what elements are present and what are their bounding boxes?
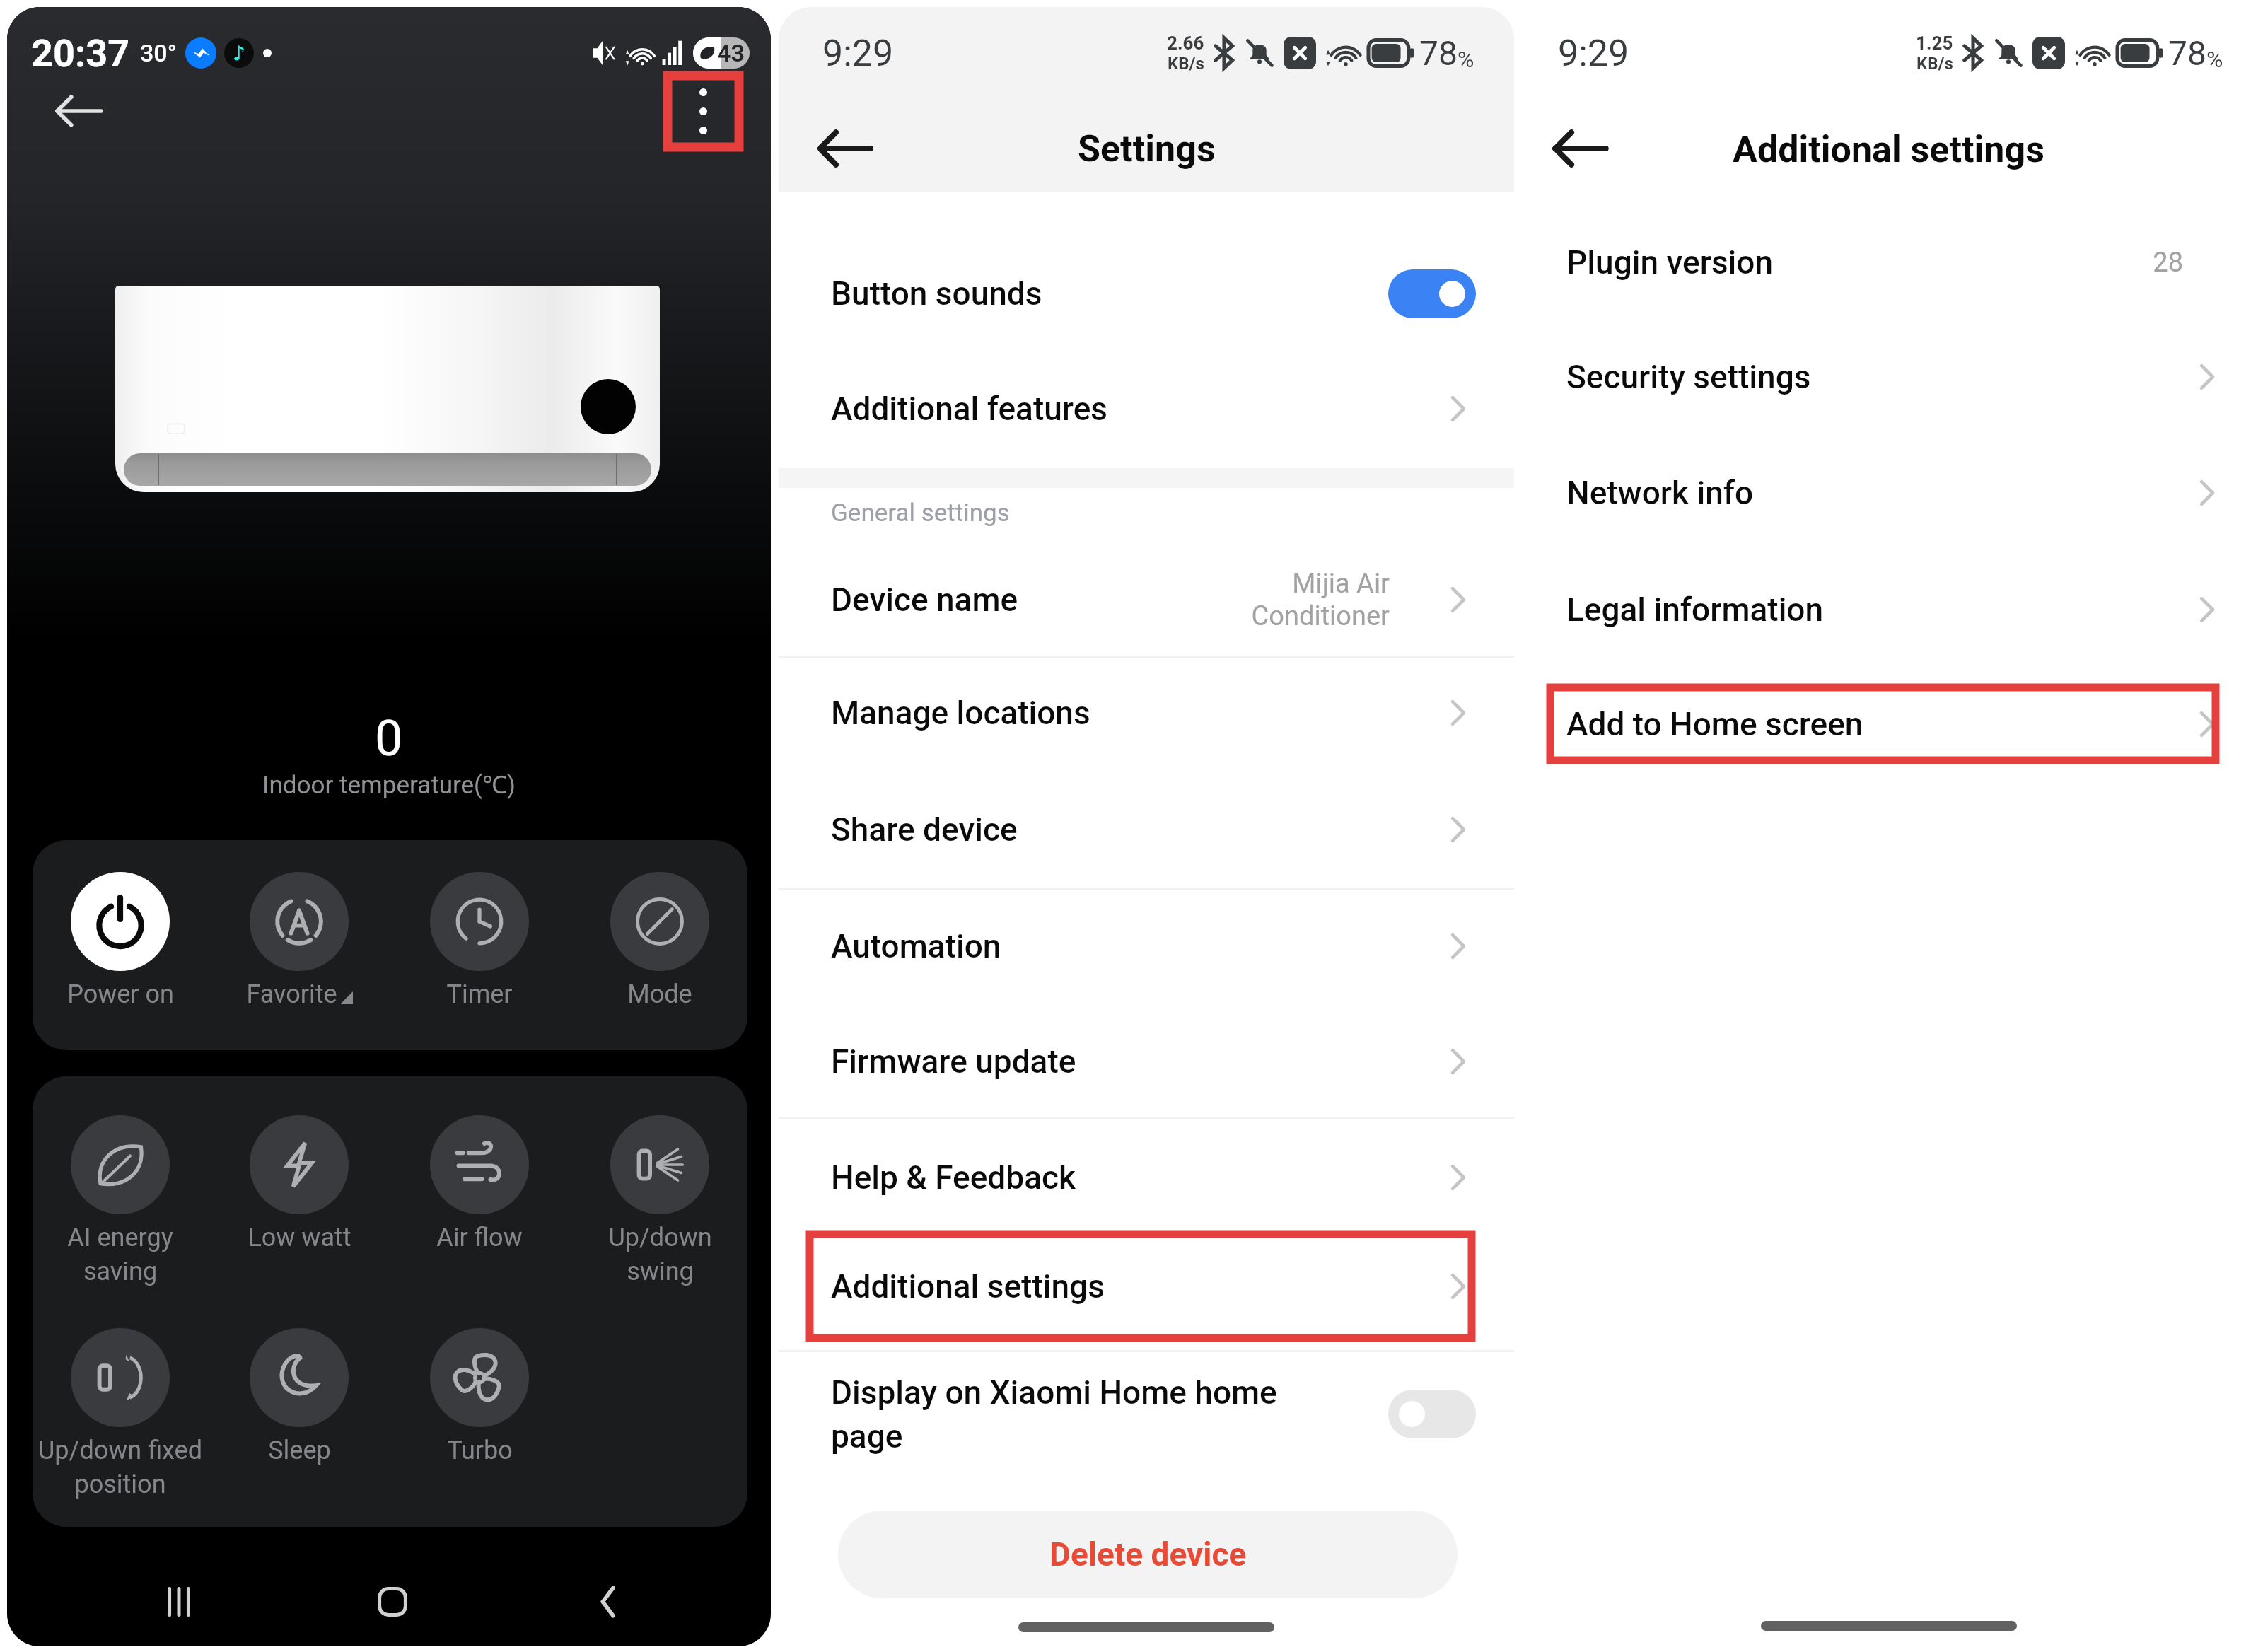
button[interactable]: Home	[357, 1566, 428, 1637]
staticText: 43	[717, 39, 745, 67]
staticText: Indoor temperature(℃)	[262, 767, 516, 801]
button[interactable]: Button sounds	[779, 248, 1514, 339]
button[interactable]: Firmware update	[779, 1016, 1514, 1107]
staticText: Manage locations	[831, 694, 1090, 732]
button[interactable]: Display on Xiaomi Home home page	[779, 1359, 1514, 1469]
button[interactable]: Share device	[779, 784, 1514, 876]
staticText: General settings	[831, 499, 1010, 528]
staticText: Firmware update	[831, 1042, 1076, 1081]
staticText: 78	[2168, 33, 2206, 73]
staticText: Favorite	[246, 979, 337, 1009]
button[interactable]: Manage locations	[779, 667, 1514, 759]
button[interactable]: Additional settings	[779, 1234, 1514, 1338]
staticText: Plugin version	[1566, 243, 1774, 281]
staticText: Sleep	[268, 1436, 331, 1465]
staticText: Additional settings	[1733, 128, 2044, 171]
staticText: Display on Xiaomi Home home page	[831, 1373, 1277, 1455]
staticText: Timer	[446, 979, 513, 1009]
staticText: Automation	[831, 927, 1001, 965]
button[interactable]: Legal information	[1514, 564, 2263, 656]
staticText: Mode	[627, 979, 692, 1009]
staticText: Delete device	[1049, 1535, 1247, 1574]
button[interactable]: Sleep	[211, 1328, 388, 1465]
button[interactable]: Automation	[779, 900, 1514, 992]
button[interactable]: Power on	[32, 872, 209, 1009]
staticText: 78	[1419, 33, 1458, 73]
staticText: 2.66	[1167, 33, 1204, 54]
button[interactable]: Plugin version	[1514, 216, 2263, 308]
staticText: 1.25	[1916, 33, 1953, 54]
staticText: ♪	[233, 42, 245, 65]
staticText: 20:37	[31, 31, 130, 76]
staticText: Turbo	[447, 1436, 513, 1465]
staticText: Device name	[831, 581, 1018, 619]
staticText: Up/down swing	[608, 1223, 712, 1286]
staticText: %	[1458, 46, 1474, 73]
button[interactable]: Recents	[144, 1566, 214, 1637]
staticText: %	[2206, 46, 2223, 73]
staticText: 28	[2153, 247, 2183, 279]
staticText: Network info	[1566, 474, 1754, 512]
button[interactable]: Delete device	[838, 1511, 1458, 1598]
button[interactable]: AI energy saving	[32, 1115, 209, 1286]
button[interactable]: Air flow	[391, 1115, 568, 1252]
staticText: Share device	[831, 810, 1018, 849]
staticText: Power on	[67, 979, 174, 1009]
staticText: 9:29	[822, 32, 894, 75]
button[interactable]: More options	[668, 76, 739, 147]
button[interactable]: Mode	[571, 872, 748, 1009]
button[interactable]: Up/down swing	[571, 1115, 748, 1286]
button[interactable]: Up/down fixed position	[32, 1328, 209, 1499]
button[interactable]: Low watt	[211, 1115, 388, 1252]
staticText: Legal information	[1566, 591, 1824, 629]
staticText: 9:29	[1558, 32, 1629, 75]
button[interactable]: Add to Home screen	[1514, 687, 2263, 760]
staticText: Settings	[1078, 127, 1216, 170]
staticText: Air flow	[436, 1223, 523, 1252]
staticText: KB/s	[1168, 54, 1204, 74]
staticText: Security settings	[1566, 358, 1811, 396]
staticText: Low watt	[248, 1223, 351, 1252]
staticText: Additional settings	[831, 1267, 1105, 1305]
button[interactable]: Back	[45, 76, 114, 146]
staticText: Help & Feedback	[831, 1158, 1076, 1197]
button[interactable]: Turbo	[391, 1328, 568, 1465]
button[interactable]: Favorite	[211, 872, 388, 1009]
staticText: AI energy saving	[67, 1223, 173, 1286]
staticText: Mijia Air Conditioner	[1251, 568, 1390, 632]
staticText: Button sounds	[831, 274, 1042, 313]
staticText: Additional features	[831, 390, 1107, 428]
button[interactable]: Back	[573, 1566, 644, 1637]
button[interactable]: Network info	[1514, 447, 2263, 539]
button[interactable]: Back	[811, 115, 879, 182]
staticText: Add to Home screen	[1566, 705, 1863, 743]
button[interactable]: Back	[1547, 115, 1615, 182]
staticText: 30°	[140, 39, 177, 67]
staticText: Up/down fixed position	[38, 1436, 202, 1499]
button[interactable]: Additional features	[779, 363, 1514, 455]
button[interactable]: Help & Feedback	[779, 1132, 1514, 1223]
staticText: KB/s	[1916, 54, 1953, 74]
button[interactable]: Timer	[391, 872, 568, 1009]
button[interactable]: Device name	[779, 554, 1514, 646]
button[interactable]: Security settings	[1514, 331, 2263, 423]
staticText: 0	[375, 709, 403, 767]
